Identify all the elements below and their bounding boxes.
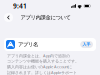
staticText: 入手	[83, 42, 91, 47]
staticText: 9:41	[13, 2, 27, 10]
staticText: アプリ内課金について	[20, 14, 70, 21]
staticText: 購入内容はお使いのApple Accountに	[7, 64, 72, 69]
button[interactable]: Back	[4, 13, 13, 22]
staticText: アプリ内課金とは、App内で追加の	[7, 53, 70, 58]
staticText: コンテンツや機能を購入することです。	[7, 59, 79, 64]
staticText: 記録されます。詳しくはAppleサポート	[7, 70, 77, 75]
staticText: アプリ名	[18, 41, 38, 48]
button[interactable]: アプリ名	[4, 38, 96, 51]
